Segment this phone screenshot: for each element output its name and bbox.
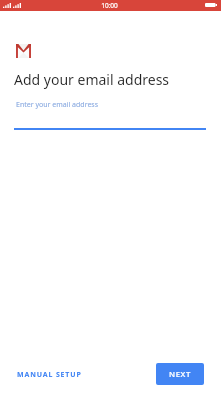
button[interactable]: MANUAL SETUP <box>8 365 91 385</box>
staticText: MANUAL SETUP <box>17 370 82 380</box>
staticText: Add your email address <box>14 70 170 89</box>
staticText: NEXT <box>169 369 191 380</box>
staticText: Enter your email address <box>16 100 99 110</box>
other: Battery <box>205 3 217 7</box>
other: Mobile signal strength <box>3 3 21 8</box>
other: Gmail <box>16 44 31 58</box>
staticText: 10:00 <box>101 1 118 10</box>
button[interactable]: NEXT <box>156 363 204 385</box>
button[interactable]: Enter your email address <box>14 96 206 130</box>
